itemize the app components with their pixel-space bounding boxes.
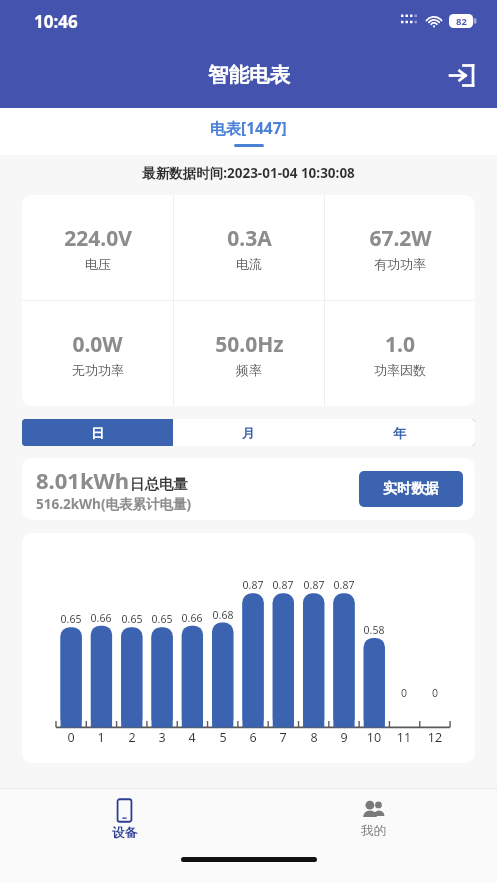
- staticText: 月: [242, 425, 255, 441]
- button[interactable]: 我的: [356, 795, 390, 843]
- staticText: 日总电量: [130, 475, 188, 493]
- staticText: 电表[1447]: [210, 117, 287, 138]
- button[interactable]: 0.3A: [174, 195, 324, 300]
- staticText: 日: [91, 425, 104, 441]
- staticText: 0.65: [117, 612, 147, 626]
- staticText: 10: [359, 729, 389, 746]
- button[interactable]: 电表[1447]: [210, 117, 287, 147]
- staticText: 年: [393, 425, 406, 441]
- staticText: 有功功率: [374, 256, 426, 272]
- staticText: 4: [177, 729, 207, 746]
- staticText: 1.0: [385, 330, 415, 359]
- staticText: 0.66: [177, 611, 207, 625]
- button[interactable]: 月: [173, 419, 324, 446]
- staticText: 功率因数: [374, 362, 426, 378]
- staticText: 0.65: [56, 612, 86, 626]
- staticText: 实时数据: [383, 480, 439, 498]
- staticText: 3: [147, 729, 177, 746]
- button[interactable]: 设备: [108, 794, 141, 845]
- staticText: 7: [268, 729, 298, 746]
- button[interactable]: 1.0: [325, 301, 475, 406]
- staticText: 最新数据时间:2023-01-04 10:30:08: [0, 164, 497, 182]
- staticText: 电压: [85, 256, 111, 272]
- staticText: 0: [420, 686, 450, 700]
- button[interactable]: 224.0V: [22, 195, 173, 300]
- staticText: 11: [389, 729, 419, 746]
- staticText: 频率: [236, 362, 262, 378]
- staticText: 0: [56, 729, 86, 746]
- staticText: 0.87: [238, 578, 268, 592]
- button[interactable]: 0.0W: [22, 301, 173, 406]
- staticText: 电流: [236, 256, 262, 272]
- staticText: 2: [117, 729, 147, 746]
- staticText: 224.0V: [64, 224, 132, 253]
- staticText: 0.68: [208, 608, 238, 622]
- staticText: 9: [329, 729, 359, 746]
- button[interactable]: Logout: [439, 53, 483, 97]
- staticText: 0.87: [299, 578, 329, 592]
- staticText: 设备: [112, 825, 137, 841]
- staticText: 8: [299, 729, 329, 746]
- staticText: 50.0Hz: [215, 330, 284, 359]
- staticText: 1: [86, 729, 116, 746]
- staticText: 无功功率: [72, 362, 124, 378]
- staticText: 8.01kWh: [36, 465, 130, 495]
- staticText: 67.2W: [369, 224, 432, 253]
- staticText: 12: [420, 729, 450, 746]
- staticText: 6: [238, 729, 268, 746]
- staticText: 0.87: [268, 578, 298, 592]
- staticText: 0.65: [147, 612, 177, 626]
- staticText: 我的: [361, 823, 386, 839]
- staticText: 0.87: [329, 578, 359, 592]
- button[interactable]: 年: [324, 419, 475, 446]
- staticText: 516.2kWh(电表累计电量): [36, 495, 192, 513]
- staticText: 0.0W: [72, 330, 123, 359]
- staticText: 0.58: [359, 623, 389, 637]
- staticText: 82: [456, 15, 467, 28]
- staticText: 0.3A: [227, 224, 272, 253]
- staticText: 智能电表: [208, 62, 290, 88]
- staticText: 0.66: [86, 611, 116, 625]
- staticText: 0: [389, 686, 419, 700]
- staticText: 10:46: [34, 10, 78, 33]
- staticText: 5: [208, 729, 238, 746]
- button[interactable]: 67.2W: [325, 195, 475, 300]
- button[interactable]: 日: [22, 419, 173, 446]
- button[interactable]: 50.0Hz: [174, 301, 324, 406]
- button[interactable]: 实时数据: [359, 471, 463, 507]
